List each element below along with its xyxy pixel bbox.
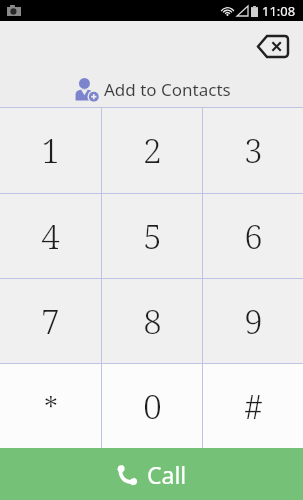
staticText: *: [44, 386, 58, 427]
staticText: Add to Contacts: [104, 78, 231, 101]
button[interactable]: 1: [0, 108, 101, 193]
button[interactable]: 7: [0, 279, 101, 363]
button[interactable]: 9: [203, 279, 303, 363]
button[interactable]: Backspace: [251, 29, 295, 63]
button[interactable]: 2: [102, 108, 202, 193]
staticText: #: [244, 384, 263, 429]
button[interactable]: *: [0, 364, 101, 448]
staticText: 1: [41, 128, 60, 173]
staticText: 11:08: [262, 2, 296, 20]
button[interactable]: Add to Contacts: [73, 77, 231, 101]
staticText: 9: [244, 299, 263, 344]
staticText: 3: [244, 128, 263, 173]
staticText: 7: [41, 299, 60, 344]
staticText: 8: [143, 299, 162, 344]
staticText: 4: [41, 214, 60, 259]
staticText: Call: [147, 459, 187, 490]
staticText: 2: [143, 128, 162, 173]
button[interactable]: 6: [203, 194, 303, 278]
button[interactable]: 3: [203, 108, 303, 193]
staticText: 5: [143, 214, 162, 259]
button[interactable]: Call: [0, 448, 303, 500]
staticText: 0: [143, 384, 162, 429]
staticText: 6: [244, 214, 263, 259]
button[interactable]: 0: [102, 364, 202, 448]
button[interactable]: #: [203, 364, 303, 448]
button[interactable]: 4: [0, 194, 101, 278]
button[interactable]: 5: [102, 194, 202, 278]
button[interactable]: 8: [102, 279, 202, 363]
